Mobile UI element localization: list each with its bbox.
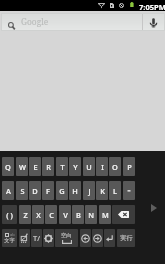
- button[interactable]: S: [16, 181, 28, 200]
- staticText: Google: [21, 16, 49, 27]
- staticText: I: [101, 162, 104, 172]
- button[interactable]: Space: [55, 229, 78, 247]
- staticText: T: [60, 162, 65, 172]
- staticText: Q: [5, 162, 11, 172]
- staticText: R: [46, 162, 51, 172]
- staticText: ( ): [6, 210, 13, 220]
- button[interactable]: M: [99, 205, 111, 224]
- button[interactable]: U: [83, 157, 95, 176]
- button[interactable]: R: [42, 157, 54, 176]
- button[interactable]: Handwriting: [19, 229, 30, 247]
- button[interactable]: Backspace: [112, 205, 135, 224]
- button[interactable]: D: [29, 181, 41, 200]
- button[interactable]: T: [56, 157, 68, 176]
- staticText: S: [20, 186, 25, 196]
- button[interactable]: ( ): [2, 205, 17, 224]
- button[interactable]: V: [59, 205, 71, 224]
- staticText: M: [102, 210, 109, 220]
- button[interactable]: Q: [2, 157, 14, 176]
- staticText: Y: [73, 162, 78, 172]
- staticText: V: [63, 210, 68, 220]
- staticText: A: [6, 186, 11, 196]
- button[interactable]: Return: [104, 229, 115, 247]
- staticText: ab: [10, 232, 15, 237]
- staticText: B: [76, 210, 81, 220]
- button[interactable]: G: [56, 181, 68, 200]
- button[interactable]: Cursor left: [80, 229, 91, 247]
- button[interactable]: T/: [31, 229, 42, 247]
- staticText: E: [33, 162, 38, 172]
- staticText: 空白: [61, 232, 72, 239]
- staticText: L: [113, 186, 117, 196]
- staticText: F: [46, 186, 50, 196]
- staticText: G: [59, 186, 65, 196]
- staticText: W: [19, 162, 26, 172]
- staticText: O: [112, 162, 118, 172]
- button[interactable]: E: [29, 157, 41, 176]
- button[interactable]: H: [69, 181, 81, 200]
- button[interactable]: Voice search: [143, 13, 164, 31]
- button[interactable]: O: [109, 157, 121, 176]
- button[interactable]: N: [85, 205, 97, 224]
- button[interactable]: W: [16, 157, 28, 176]
- button[interactable]: P: [123, 157, 135, 176]
- button[interactable]: Y: [69, 157, 81, 176]
- button[interactable]: J: [83, 181, 95, 200]
- staticText: K: [100, 186, 105, 196]
- staticText: J: [88, 186, 91, 196]
- button[interactable]: 実行: [117, 229, 135, 247]
- button[interactable]: X: [32, 205, 44, 224]
- button[interactable]: I: [96, 157, 108, 176]
- button[interactable]: A: [2, 181, 14, 200]
- button[interactable]: K: [96, 181, 108, 200]
- staticText: U: [86, 162, 92, 172]
- staticText: C: [49, 210, 54, 220]
- staticText: H: [72, 186, 78, 196]
- button[interactable]: Cursor right: [92, 229, 103, 247]
- staticText: T/: [33, 233, 40, 243]
- staticText: 7:05PM: [139, 2, 165, 12]
- button[interactable]: L: [109, 181, 121, 200]
- button[interactable]: Google: [1, 13, 165, 31]
- button[interactable]: Hyphen: [123, 181, 135, 200]
- staticText: 実行: [120, 234, 133, 242]
- button[interactable]: Settings: [43, 229, 54, 247]
- button[interactable]: Z: [19, 205, 31, 224]
- staticText: D: [32, 186, 38, 196]
- button[interactable]: C: [45, 205, 57, 224]
- button[interactable]: B: [72, 205, 84, 224]
- staticText: P: [127, 162, 132, 172]
- button[interactable]: F: [42, 181, 54, 200]
- staticText: Z: [23, 210, 28, 220]
- staticText: 文字: [4, 237, 15, 244]
- button[interactable]: Input mode: [2, 229, 17, 247]
- staticText: X: [36, 210, 41, 220]
- staticText: N: [88, 210, 94, 220]
